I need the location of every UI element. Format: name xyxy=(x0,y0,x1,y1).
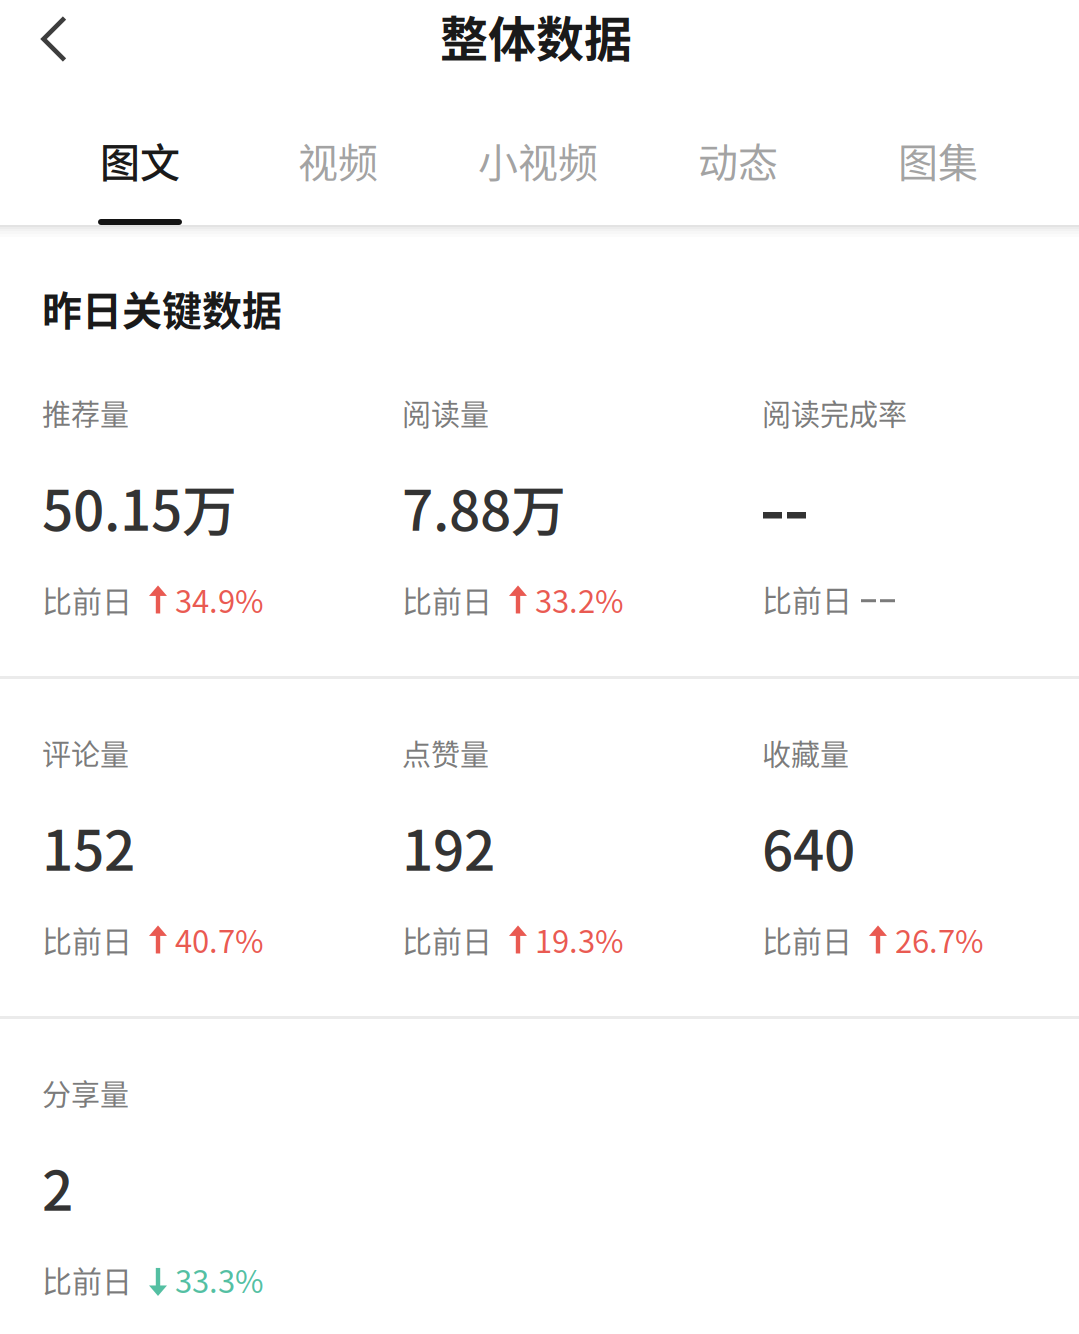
staticText: 点赞量 xyxy=(402,732,489,774)
staticText: 50.15万 xyxy=(42,467,237,547)
button[interactable]: 图集 xyxy=(838,97,1037,223)
staticText: 评论量 xyxy=(42,732,129,774)
button[interactable]: 动态 xyxy=(638,97,837,223)
staticText: 分享量 xyxy=(42,1072,129,1114)
staticText: 2 xyxy=(42,1147,73,1227)
staticText: 比前日 xyxy=(762,577,852,620)
staticText: 阅读完成率 xyxy=(762,392,907,434)
staticText: 34.9% xyxy=(175,577,264,622)
staticText: 推荐量 xyxy=(42,392,129,434)
staticText: 比前日 xyxy=(42,918,132,961)
staticText: 比前日 xyxy=(762,918,852,961)
staticText: 视频 xyxy=(298,131,378,189)
staticText: 26.7% xyxy=(895,917,984,962)
staticText: 7.88万 xyxy=(402,467,566,547)
staticText: 33.2% xyxy=(535,577,624,622)
staticText: 动态 xyxy=(698,131,778,189)
button[interactable]: 视频 xyxy=(238,97,437,223)
button[interactable]: 图文 xyxy=(40,97,239,223)
staticText: 19.3% xyxy=(535,917,624,962)
button[interactable]: 小视频 xyxy=(438,97,637,223)
staticText: 整体数据 xyxy=(440,1,632,70)
staticText: 小视频 xyxy=(478,131,598,189)
button[interactable]: Back xyxy=(16,2,92,76)
staticText: 40.7% xyxy=(175,917,264,962)
staticText: 192 xyxy=(402,807,495,887)
staticText: 昨日关键数据 xyxy=(42,279,282,337)
staticText: 图集 xyxy=(898,131,978,189)
staticText: 比前日 xyxy=(402,578,492,621)
staticText: 33.3% xyxy=(175,1257,264,1302)
staticText: 比前日 xyxy=(402,918,492,961)
staticText: 比前日 xyxy=(42,578,132,621)
staticText: 阅读量 xyxy=(402,392,489,434)
staticText: 比前日 xyxy=(42,1258,132,1301)
staticText: 152 xyxy=(42,807,135,887)
staticText: 640 xyxy=(762,807,855,887)
staticText: 图文 xyxy=(100,131,180,189)
staticText: 收藏量 xyxy=(762,732,849,774)
